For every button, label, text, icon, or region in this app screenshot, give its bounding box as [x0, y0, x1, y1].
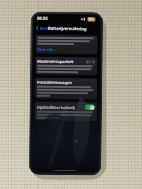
staticText: Batterijveroudering: [48, 26, 87, 31]
staticText: Optimaliseer batterij: [37, 105, 75, 110]
staticText: Prestatievermogen: [37, 80, 72, 85]
button[interactable]: Meer info…: [37, 47, 57, 52]
staticText: 89 %: [86, 59, 95, 64]
button[interactable]: Meer info…: [35, 35, 98, 54]
button[interactable]: Maximumcapaciteit: [35, 57, 97, 75]
staticText: Meer info…: [37, 47, 57, 52]
button[interactable]: Optimaliseer batterij aan: [85, 104, 95, 110]
button[interactable]: Batterij: [33, 25, 56, 32]
staticText: 08:36: [37, 16, 48, 22]
staticText: Batterij: [40, 26, 54, 31]
staticText: Maximumcapaciteit: [37, 59, 73, 64]
button[interactable]: Prestatievermogen: [35, 78, 97, 99]
button[interactable]: Optimaliseer batterij: [35, 102, 97, 121]
button[interactable]: Optimaliseer batterij: [37, 104, 95, 110]
